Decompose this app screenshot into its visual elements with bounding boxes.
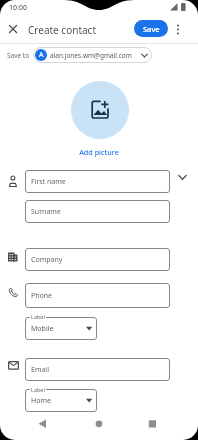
staticText: 10:00 (9, 3, 27, 13)
staticText: alan.jones.wm@gmail.com (50, 51, 132, 60)
staticText: Label (31, 313, 45, 320)
button[interactable] (175, 24, 181, 35)
button[interactable]: Surname (25, 200, 170, 223)
staticText: Company (31, 255, 63, 265)
button[interactable] (140, 412, 168, 436)
button[interactable]: First name (25, 170, 170, 193)
staticText: Home (31, 396, 51, 406)
button[interactable]: Save (134, 20, 168, 37)
button[interactable] (71, 81, 129, 139)
staticText: Surname (31, 207, 61, 217)
staticText: A (39, 50, 44, 60)
button[interactable] (30, 412, 58, 436)
button[interactable] (85, 412, 113, 436)
staticText: Phone (31, 291, 53, 301)
button[interactable] (178, 174, 187, 181)
button[interactable]: Email (25, 358, 170, 381)
button[interactable]: Add picture (0, 147, 198, 157)
staticText: Save (143, 24, 160, 34)
button[interactable]: Mobile (25, 317, 97, 340)
staticText: Mobile (31, 324, 54, 334)
staticText: Save to (7, 51, 30, 60)
button[interactable]: Company (25, 248, 170, 271)
staticText: First name (31, 177, 66, 187)
button[interactable]: A (33, 47, 152, 63)
button[interactable]: Home (25, 389, 97, 412)
staticText: Email (31, 365, 49, 375)
button[interactable] (9, 25, 17, 33)
staticText: Label (31, 386, 45, 393)
button[interactable]: Phone (25, 283, 170, 308)
staticText: Create contact (28, 23, 97, 37)
